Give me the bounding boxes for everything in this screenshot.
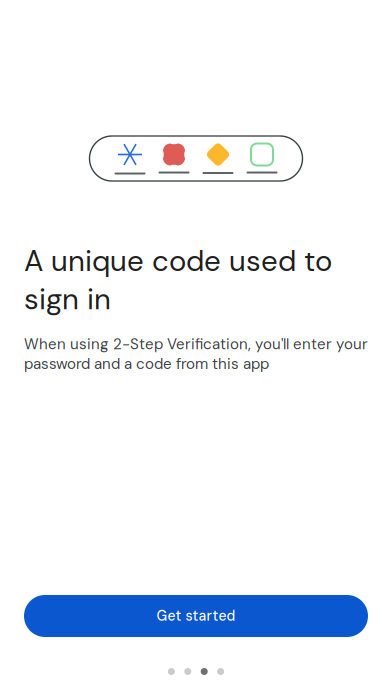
button[interactable]: Get started [24,595,368,637]
staticText: When using 2-Step Verification, you'll e… [24,334,368,374]
staticText: A unique code used to sign in [24,242,332,318]
staticText: Get started [156,607,235,625]
